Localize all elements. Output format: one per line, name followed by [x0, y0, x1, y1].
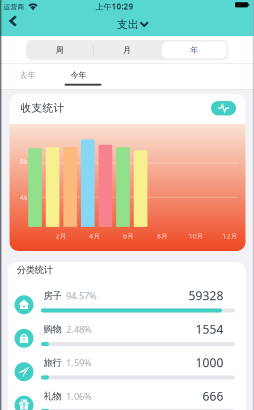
- staticText: 10月: [189, 232, 204, 240]
- staticText: 94.57%: [66, 289, 97, 302]
- staticText: 2月: [55, 232, 66, 240]
- staticText: 周: [56, 45, 64, 55]
- staticText: 运营商: [3, 3, 24, 11]
- button[interactable]: 去年: [7, 64, 47, 86]
- staticText: 2.48%: [66, 323, 92, 335]
- staticText: 年: [190, 45, 198, 55]
- staticText: 1554: [195, 321, 223, 337]
- staticText: 4月: [89, 232, 100, 240]
- button[interactable]: 年: [162, 41, 226, 58]
- staticText: 12月: [222, 232, 237, 240]
- staticText: 上午10:29: [95, 1, 133, 12]
- button[interactable]: 购物: [7, 322, 246, 355]
- button[interactable]: 支出: [0, 0, 254, 36]
- button[interactable]: 房子: [7, 288, 246, 321]
- button[interactable]: 月: [93, 40, 160, 60]
- staticText: 8月: [157, 232, 168, 240]
- staticText: 月: [123, 45, 131, 55]
- button[interactable]: 旅行: [7, 355, 246, 388]
- staticText: 今年: [70, 70, 86, 80]
- staticText: 8k: [20, 157, 28, 166]
- staticText: 4k: [20, 193, 28, 202]
- staticText: 去年: [19, 70, 35, 80]
- button[interactable]: 礼物: [7, 388, 246, 410]
- staticText: 收支统计: [20, 101, 64, 114]
- staticText: 礼物: [43, 390, 61, 402]
- staticText: 1.59%: [66, 356, 92, 369]
- staticText: 分类统计: [17, 264, 53, 276]
- button[interactable]: [211, 101, 236, 115]
- staticText: 购物: [43, 323, 61, 335]
- staticText: 59328: [188, 288, 223, 303]
- staticText: 房子: [43, 290, 61, 301]
- staticText: 666: [202, 388, 223, 404]
- button[interactable]: 周: [26, 40, 93, 60]
- staticText: 1000: [195, 355, 223, 370]
- button[interactable]: [0, 10, 26, 32]
- button[interactable]: 今年: [58, 64, 98, 86]
- staticText: 1.06%: [66, 390, 92, 402]
- staticText: 6月: [123, 232, 134, 240]
- staticText: 支出: [117, 18, 139, 31]
- staticText: 旅行: [43, 357, 61, 368]
